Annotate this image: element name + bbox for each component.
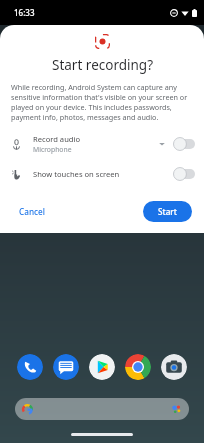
staticText: Show touches on screen: [33, 169, 155, 179]
staticText: Start recording?: [52, 56, 153, 74]
button[interactable]: Toggle: [173, 137, 195, 151]
button[interactable]: Play Store: [89, 354, 115, 380]
button[interactable]: Show touches on screen: [0, 161, 204, 187]
button[interactable]: [15, 398, 189, 420]
button[interactable]: Camera: [161, 354, 187, 380]
button[interactable]: Chrome: [125, 354, 151, 380]
button[interactable]: Start: [143, 201, 192, 222]
staticText: Microphone: [33, 145, 72, 154]
button[interactable]: Record audio: [0, 131, 204, 157]
button[interactable]: Cancel: [12, 201, 52, 222]
button[interactable]: Messages: [53, 354, 79, 380]
staticText: 16:33: [14, 7, 35, 18]
staticText: Record audio: [33, 134, 81, 144]
staticText: Start: [158, 206, 177, 217]
button[interactable]: Phone: [17, 354, 43, 380]
staticText: While recording, Android System can capt…: [11, 82, 193, 122]
button[interactable]: Toggle: [173, 167, 195, 181]
staticText: Cancel: [19, 206, 45, 217]
button[interactable]: Choose audio source: [155, 137, 169, 151]
